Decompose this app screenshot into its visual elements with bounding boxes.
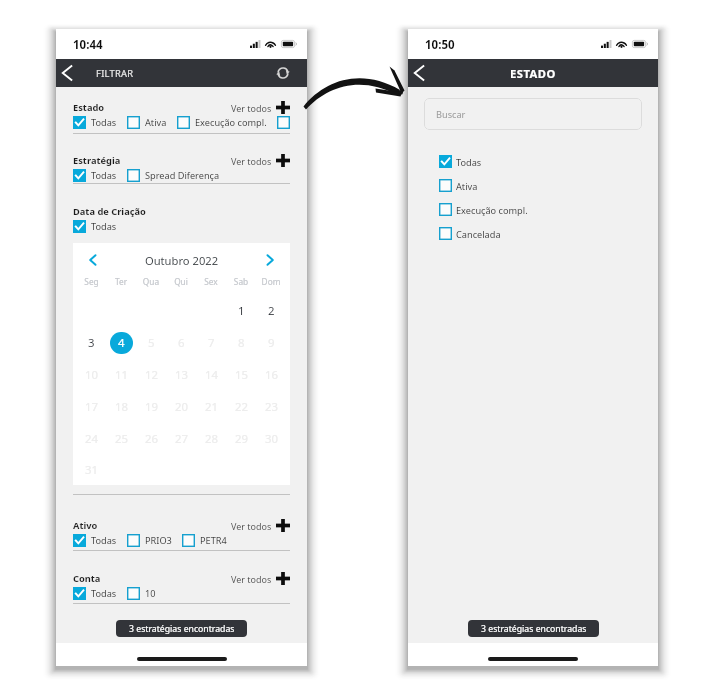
staticText: Execução compl.	[456, 204, 528, 217]
button[interactable]: Add	[276, 519, 290, 532]
button[interactable]: Unchecked	[177, 116, 190, 129]
staticText: 11	[115, 367, 129, 383]
button[interactable]: 3 estratégias encontradas	[116, 620, 247, 637]
button[interactable]: 5	[140, 332, 163, 354]
button[interactable]: Unchecked	[182, 534, 195, 547]
button[interactable]: 1	[230, 300, 253, 322]
button[interactable]: 19	[140, 396, 163, 418]
button[interactable]: 13	[170, 364, 193, 386]
staticText: 1	[238, 303, 245, 319]
staticText: 9	[268, 335, 275, 351]
button[interactable]: Ver todos	[231, 519, 290, 532]
button[interactable]: Checked	[439, 149, 482, 173]
button[interactable]: Checked	[73, 534, 117, 547]
button[interactable]: Unchecked	[439, 221, 501, 245]
button[interactable]: 8	[230, 332, 253, 354]
staticText: 5	[148, 335, 155, 351]
button[interactable]: Back	[408, 60, 434, 86]
staticText: 3 estratégias encontradas	[481, 623, 587, 635]
button[interactable]: 3 estratégias encontradas	[468, 620, 599, 637]
staticText: 18	[115, 399, 129, 415]
button[interactable]: Unchecked	[127, 534, 140, 547]
button[interactable]: Buscar	[424, 98, 642, 130]
staticText: ESTADO	[510, 66, 556, 81]
button[interactable]: Unchecked	[177, 116, 267, 129]
button[interactable]: 11	[110, 364, 133, 386]
button[interactable]: Add	[276, 101, 290, 114]
button[interactable]: 24	[80, 428, 103, 450]
staticText: 29	[235, 431, 249, 447]
button[interactable]: 28	[200, 428, 223, 450]
staticText: Ativo	[73, 519, 98, 532]
button[interactable]: 21	[200, 396, 223, 418]
button[interactable]: 20	[170, 396, 193, 418]
button[interactable]: Refresh	[276, 66, 290, 80]
button[interactable]: 17	[80, 396, 103, 418]
button[interactable]: Unchecked	[439, 179, 452, 192]
button[interactable]: Checked	[73, 587, 117, 600]
button[interactable]: Unchecked	[127, 169, 220, 182]
button[interactable]: 18	[110, 396, 133, 418]
staticText: Outubro 2022	[113, 253, 250, 268]
button[interactable]: 6	[170, 332, 193, 354]
staticText: Cancelada	[456, 228, 501, 241]
staticText: 6	[178, 335, 185, 351]
staticText: 16	[265, 367, 279, 383]
button[interactable]: Unchecked	[182, 534, 227, 547]
button[interactable]: 2	[260, 300, 283, 322]
button[interactable]: Ver todos	[231, 154, 290, 167]
button[interactable]: Unchecked	[127, 116, 167, 129]
button[interactable]: Checked	[73, 169, 86, 182]
button[interactable]: Checked	[73, 534, 86, 547]
button[interactable]: Unchecked	[439, 197, 528, 221]
button[interactable]: Back	[56, 60, 82, 86]
button[interactable]: Checked	[439, 155, 452, 168]
button[interactable]: Checked	[73, 169, 117, 182]
button[interactable]: Unchecked	[127, 587, 140, 600]
staticText: 12	[145, 367, 159, 383]
button[interactable]: Checked	[73, 116, 117, 129]
staticText: 27	[175, 431, 189, 447]
button[interactable]: Unchecked	[127, 116, 140, 129]
button[interactable]: Next month	[250, 250, 290, 270]
button[interactable]: Checked	[73, 587, 86, 600]
button[interactable]: Unchecked	[439, 173, 478, 197]
button[interactable]: Unchecked	[439, 227, 452, 240]
button[interactable]: Checked	[73, 220, 117, 233]
button[interactable]: Unchecked	[127, 587, 156, 600]
button[interactable]: 23	[260, 396, 283, 418]
button[interactable]: Ver todos	[231, 101, 290, 114]
button[interactable]: Checked	[73, 116, 86, 129]
button[interactable]: 30	[260, 428, 283, 450]
button[interactable]: Ver todos	[231, 572, 290, 585]
button[interactable]: Add	[276, 572, 290, 585]
button[interactable]: Add	[276, 154, 290, 167]
button[interactable]: 26	[140, 428, 163, 450]
button[interactable]: 4	[110, 332, 133, 354]
button[interactable]: 12	[140, 364, 163, 386]
button[interactable]: 9	[260, 332, 283, 354]
staticText: 3	[88, 335, 95, 351]
staticText: 14	[205, 367, 219, 383]
button[interactable]: 10	[80, 364, 103, 386]
button[interactable]: Unchecked	[277, 116, 290, 129]
button[interactable]: 15	[230, 364, 253, 386]
button[interactable]: 22	[230, 396, 253, 418]
button[interactable]: 14	[200, 364, 223, 386]
button[interactable]: 25	[110, 428, 133, 450]
button[interactable]: 27	[170, 428, 193, 450]
button[interactable]: Unchecked	[127, 534, 172, 547]
staticText: Buscar	[436, 108, 466, 121]
button[interactable]: Previous month	[73, 250, 113, 270]
button[interactable]: Unchecked	[439, 203, 452, 216]
button[interactable]: 16	[260, 364, 283, 386]
button[interactable]: Checked	[73, 220, 86, 233]
button[interactable]: 29	[230, 428, 253, 450]
button[interactable]: 3	[80, 332, 103, 354]
staticText: Todas	[91, 169, 117, 182]
staticText: 3 estratégias encontradas	[129, 623, 235, 635]
button[interactable]: 31	[80, 459, 103, 481]
staticText: PRIO3	[145, 534, 172, 547]
button[interactable]: Unchecked	[127, 169, 140, 182]
